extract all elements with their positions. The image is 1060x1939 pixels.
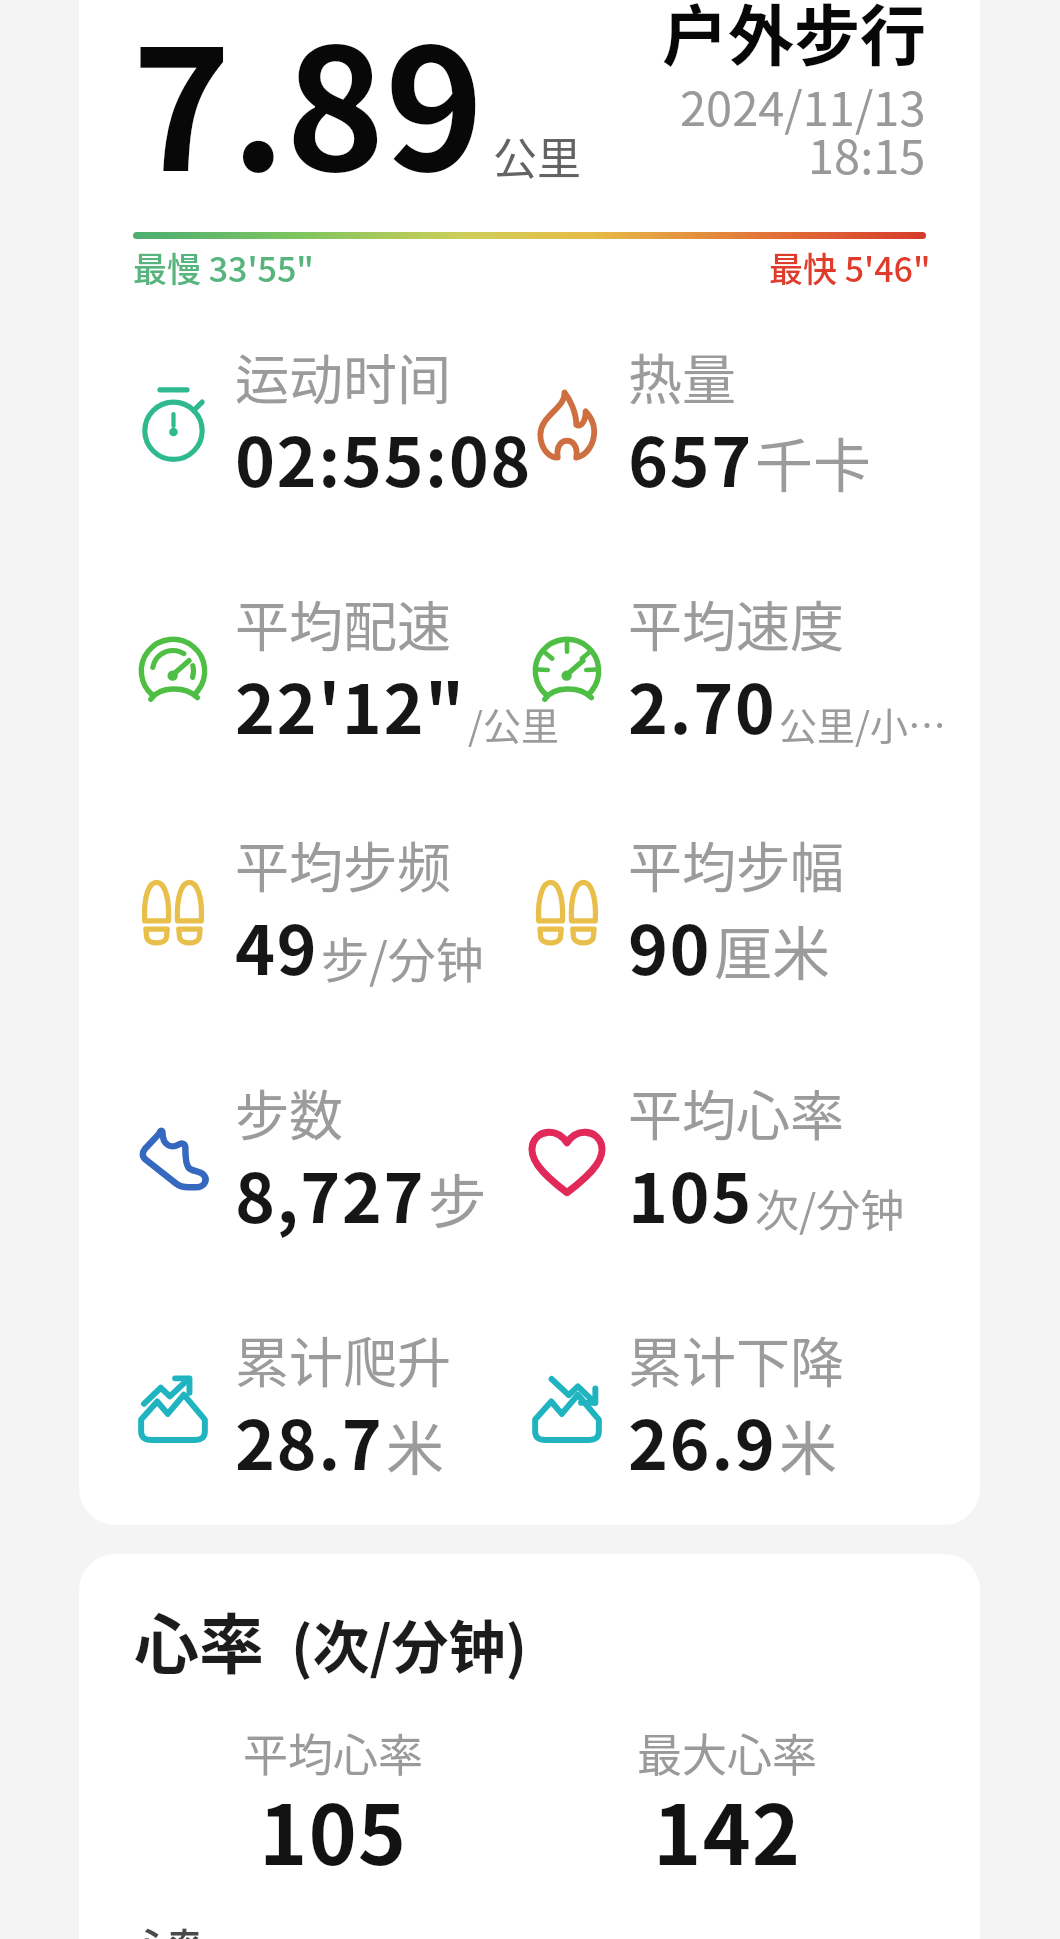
staticText: 2024/11/13 — [680, 71, 926, 139]
staticText: 平均心率 — [628, 1073, 844, 1151]
button[interactable]: 运动时间 — [110, 334, 533, 514]
staticText: 户外步行 — [662, 0, 926, 79]
staticText: 热量 — [628, 337, 736, 415]
staticText: 28.7 — [235, 1391, 384, 1489]
staticText: 步数 — [235, 1073, 343, 1151]
button[interactable]: 平均配速 — [110, 581, 558, 761]
staticText: 最慢 33'55" — [133, 243, 314, 292]
staticText: 心率 — [134, 1593, 265, 1687]
button[interactable]: 累计下降 — [504, 1317, 846, 1497]
staticText: 次/分钟 — [755, 1176, 905, 1240]
staticText: 厘米 — [714, 908, 831, 992]
staticText: 7.89 — [132, 0, 484, 219]
staticText: 平均速度 — [628, 584, 844, 662]
staticText: 49 — [235, 896, 319, 994]
staticText: 105 — [259, 1770, 408, 1889]
button[interactable]: 平均心率 — [504, 1070, 905, 1250]
staticText: 步/分钟 — [321, 922, 484, 992]
staticText: 公里 — [493, 124, 581, 188]
staticText: 18:15 — [808, 119, 926, 187]
staticText: 90 — [628, 896, 712, 994]
staticText: 最大心率 — [637, 1720, 818, 1785]
staticText: 平均心率 — [243, 1720, 424, 1785]
staticText: 657 — [628, 408, 753, 506]
staticText: /公里 — [468, 696, 559, 751]
staticText: 2.70 — [628, 655, 777, 753]
staticText: 22'12" — [235, 655, 466, 753]
staticText: 米 — [779, 1403, 838, 1487]
staticText: 142 — [653, 1770, 802, 1889]
staticText: 米 — [386, 1403, 445, 1487]
staticText: 平均步幅 — [628, 825, 844, 903]
staticText: 8,727 — [235, 1144, 426, 1242]
button[interactable]: 平均步幅 — [504, 822, 846, 1002]
button[interactable]: 平均步频 — [110, 822, 483, 1002]
staticText: 心率 — [135, 1919, 201, 1939]
staticText: 最快 5'46" — [769, 243, 931, 292]
staticText: 千卡 — [755, 420, 872, 504]
button[interactable]: 平均速度 — [504, 581, 946, 761]
button[interactable]: 累计爬升 — [110, 1317, 452, 1497]
button[interactable]: 步数 — [110, 1070, 486, 1250]
staticText: 步 — [428, 1156, 487, 1240]
staticText: 105 — [628, 1144, 753, 1242]
staticText: 平均步频 — [235, 825, 451, 903]
staticText: 公里/小… — [779, 696, 946, 751]
staticText: 累计爬升 — [235, 1320, 451, 1398]
staticText: (次/分钟) — [291, 1602, 528, 1685]
staticText: 运动时间 — [235, 337, 451, 415]
staticText: 累计下降 — [628, 1320, 844, 1398]
staticText: 02:55:08 — [235, 408, 532, 506]
staticText: 26.9 — [628, 1391, 777, 1489]
staticText: 平均配速 — [235, 584, 451, 662]
button[interactable]: 热量 — [504, 334, 872, 514]
